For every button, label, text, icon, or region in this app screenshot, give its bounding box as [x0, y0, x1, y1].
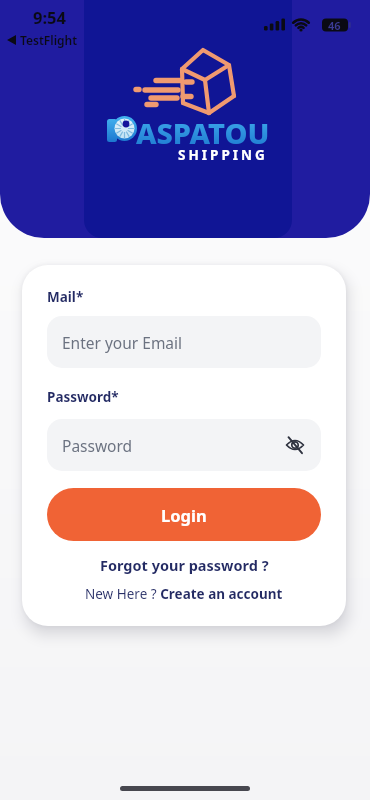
button[interactable]: Forgot your password ? — [47, 555, 321, 575]
staticText: Enter your Email — [62, 332, 183, 353]
staticText: New Here ? Create an account — [85, 585, 283, 603]
staticText: 46 — [328, 18, 341, 33]
button[interactable]: Password — [47, 419, 321, 471]
staticText: SHIPPING — [178, 146, 268, 164]
staticText: 9:54 — [33, 6, 66, 28]
button[interactable]: Enter your Email — [47, 316, 321, 368]
button[interactable]: New Here ? Create an account — [47, 585, 321, 603]
button[interactable]: Login — [47, 488, 321, 541]
staticText: Mail* — [47, 288, 84, 306]
staticText: Forgot your password ? — [100, 555, 269, 575]
staticText: ASPATOU — [136, 113, 270, 152]
staticText: Password* — [47, 388, 119, 406]
staticText: TestFlight — [20, 32, 78, 48]
staticText: Password — [62, 435, 133, 456]
staticText: Login — [161, 504, 207, 526]
